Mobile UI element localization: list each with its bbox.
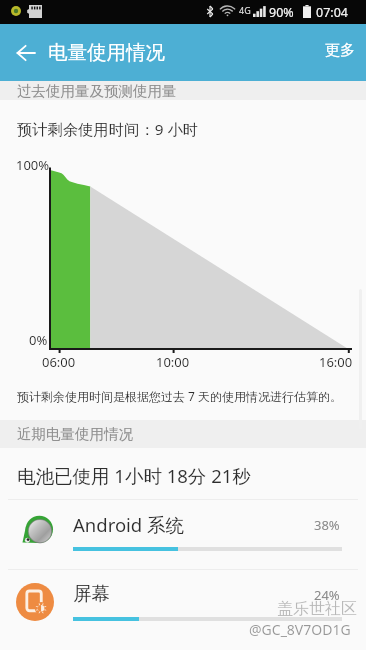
staticText: 预计剩余使用时间是根据您过去 7 天的使用情况进行估算的。 (17, 388, 343, 404)
staticText: 电池已使用 1小时 18分 21秒 (17, 463, 251, 488)
staticText: 更多 (325, 41, 355, 60)
staticText: 07:04 (316, 4, 348, 21)
staticText: 4G (239, 4, 251, 16)
staticText: 近期电量使用情况 (17, 425, 133, 443)
staticText: 电量使用情况 (48, 40, 165, 65)
staticText: 16:00 (319, 353, 353, 371)
staticText: 过去使用量及预测使用量 (17, 82, 177, 100)
staticText: 预计剩余使用时间：9 小时 (17, 119, 198, 140)
staticText: 屏幕 (73, 582, 110, 605)
staticText: 38% (314, 516, 340, 534)
staticText: 100% (16, 156, 50, 174)
staticText: 90% (269, 4, 294, 21)
staticText: @GC_8V7OD1G (249, 620, 351, 639)
staticText: 盖乐世社区 (277, 599, 357, 619)
button[interactable]: 屏幕 (0, 569, 366, 639)
staticText: 10:00 (156, 353, 190, 371)
staticText: 24% (314, 586, 340, 604)
button[interactable]: Android 系统 (0, 499, 366, 569)
staticText: Android 系统 (73, 512, 185, 537)
staticText: 0% (29, 331, 48, 349)
button[interactable]: 更多 (325, 41, 355, 60)
button[interactable]: Back (6, 33, 45, 72)
staticText: 06:00 (42, 353, 76, 371)
